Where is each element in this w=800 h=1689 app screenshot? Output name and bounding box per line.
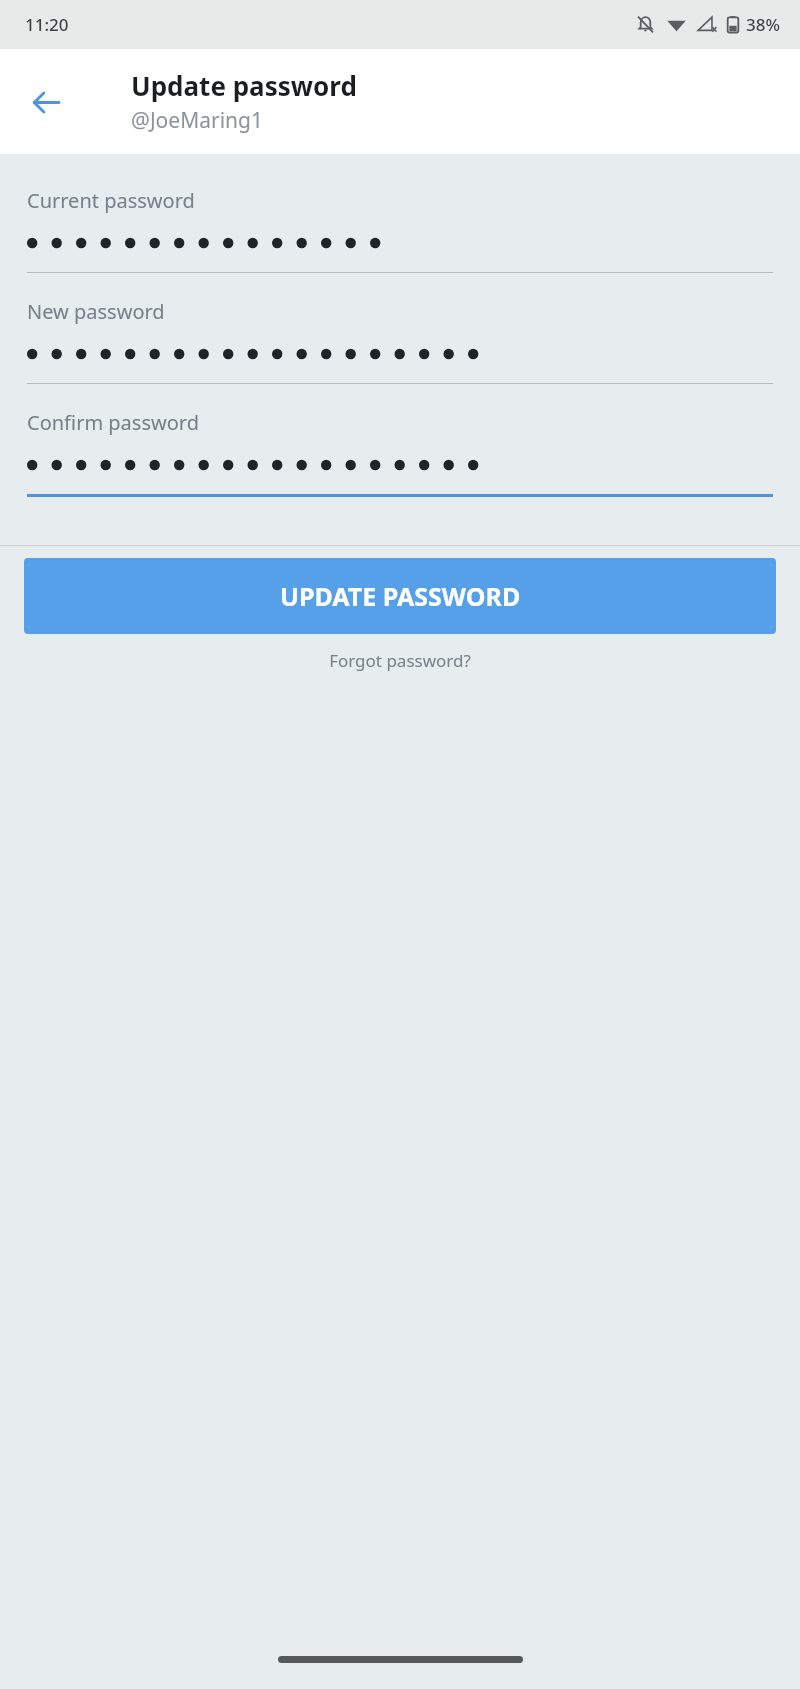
staticText: Current password bbox=[27, 187, 195, 214]
staticText: 38% bbox=[746, 13, 780, 36]
staticText: @JoeMaring1 bbox=[131, 106, 263, 135]
staticText: Forgot password? bbox=[329, 649, 471, 672]
staticText: 11:20 bbox=[25, 13, 69, 36]
staticText: Update password bbox=[131, 68, 357, 103]
staticText: Confirm password bbox=[27, 409, 199, 436]
button[interactable]: Confirm password bbox=[0, 409, 800, 522]
button[interactable]: UPDATE PASSWORD bbox=[24, 558, 776, 634]
staticText: UPDATE PASSWORD bbox=[280, 579, 521, 613]
button[interactable]: New password bbox=[0, 298, 800, 409]
button[interactable]: Current password bbox=[0, 187, 800, 298]
staticText: New password bbox=[27, 298, 165, 325]
button[interactable]: Back bbox=[14, 70, 78, 134]
button[interactable]: Forgot password? bbox=[0, 645, 800, 676]
